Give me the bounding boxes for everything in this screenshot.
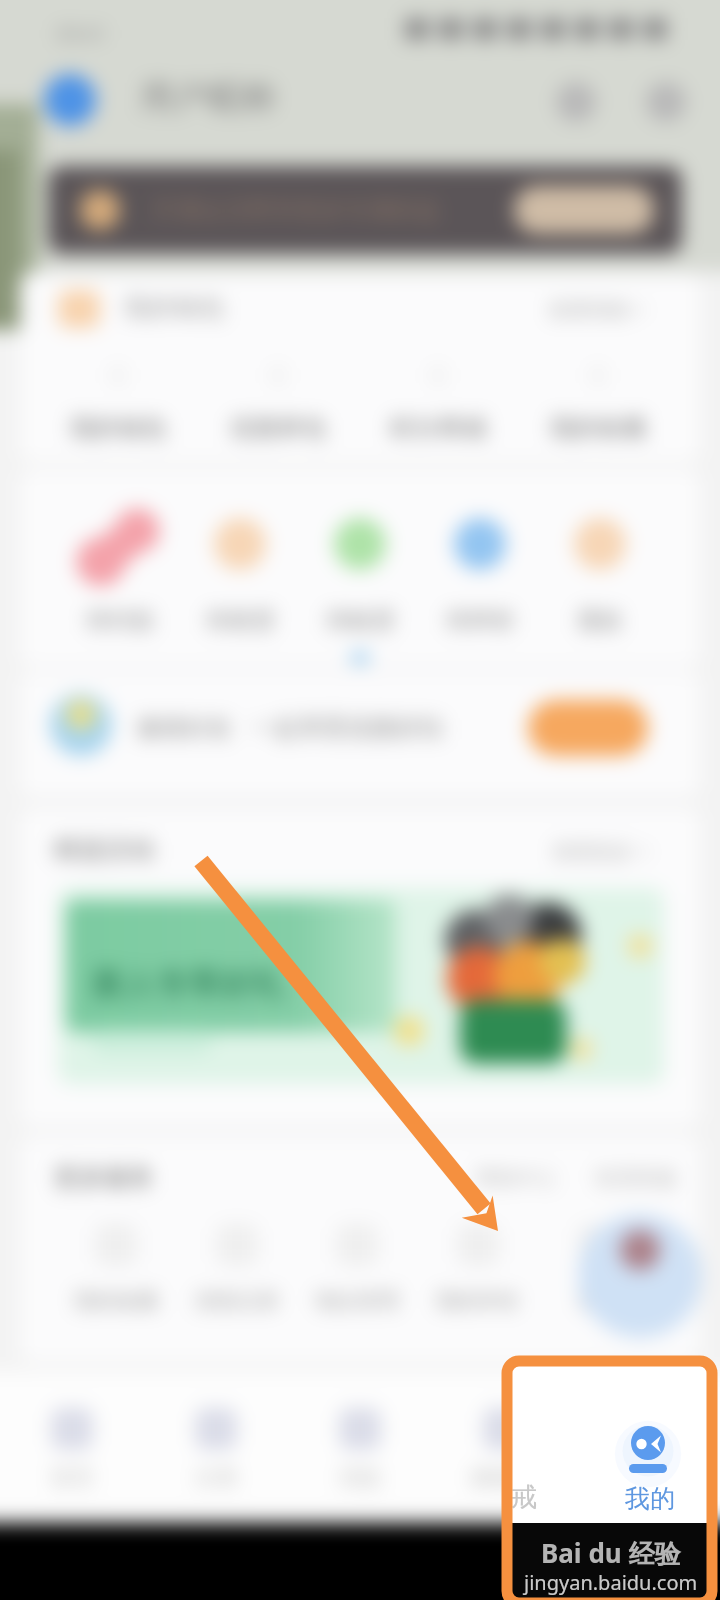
staticText: 戒 <box>511 1481 537 1514</box>
button[interactable]: 开通会员尊享更多专属权益 <box>48 166 682 254</box>
staticText: 精选活动 <box>54 834 154 865</box>
button[interactable] <box>20 672 700 796</box>
button[interactable]: Settings <box>646 82 686 122</box>
staticText: 地址管理 <box>315 1288 399 1314</box>
button[interactable]: 0 <box>218 358 338 456</box>
staticText: 浏览记录 <box>195 1288 279 1314</box>
staticText: Bai du 经验 <box>541 1535 681 1571</box>
button[interactable]: 客服 <box>538 1216 658 1336</box>
button[interactable]: 首页 <box>2 1390 142 1508</box>
staticText: 客服 <box>577 1288 619 1314</box>
staticText: 查看明细 > <box>548 296 645 323</box>
staticText: 帮助中心 <box>476 1166 556 1191</box>
button[interactable]: 待评价 <box>420 506 540 656</box>
staticText: 优惠券包 <box>230 413 326 443</box>
staticText: 我的评价 <box>436 1288 520 1314</box>
button[interactable]: 购物车 <box>434 1390 574 1508</box>
button[interactable] <box>44 74 96 126</box>
staticText: 用户昵称 <box>140 76 276 116</box>
button[interactable]: 地址管理 <box>297 1216 417 1336</box>
button[interactable]: 消息 <box>290 1390 430 1508</box>
button[interactable]: 我的 <box>578 1390 718 1508</box>
staticText: 待付款 <box>86 606 155 635</box>
staticText: 积分商城 <box>390 413 486 443</box>
staticText: 购物车 <box>471 1464 537 1492</box>
button[interactable]: 0 <box>378 358 498 456</box>
button[interactable] <box>528 700 648 756</box>
button[interactable]: 浏览记录 <box>177 1216 297 1336</box>
staticText: 我的收藏 <box>74 1288 158 1314</box>
button[interactable]: 待收货 <box>300 506 420 656</box>
button[interactable]: 退款 <box>540 506 660 656</box>
staticText: 我的钱包 <box>124 292 224 323</box>
staticText: 我的 <box>626 1464 670 1492</box>
staticText: 更多服务 <box>54 1162 154 1193</box>
staticText: 我的钱包 <box>70 413 166 443</box>
staticText: 待发货 <box>206 606 275 635</box>
button[interactable]: 待付款 <box>60 506 180 656</box>
staticText: 我的收藏 <box>550 413 646 443</box>
staticText: 待评价 <box>446 606 515 635</box>
button[interactable]: 我的收藏 <box>56 1216 176 1336</box>
button[interactable]: Scan <box>556 82 596 122</box>
staticText: jingyan.baidu.com <box>524 1569 698 1596</box>
button[interactable]: 待发货 <box>180 506 300 656</box>
button[interactable]: 分类 <box>146 1390 286 1508</box>
staticText: 查看更多 > <box>552 838 649 865</box>
staticText: 待收货 <box>326 606 395 635</box>
button[interactable]: 0 <box>538 358 658 456</box>
staticText: 退款 <box>577 606 623 635</box>
button[interactable]: 0 <box>58 358 178 456</box>
staticText: 新人专享好礼 <box>92 964 284 1004</box>
staticText: 我的 <box>625 1483 675 1514</box>
staticText: 邀请好友 一起享受优惠折扣 <box>136 710 443 743</box>
button[interactable]: 我的评价 <box>418 1216 538 1336</box>
